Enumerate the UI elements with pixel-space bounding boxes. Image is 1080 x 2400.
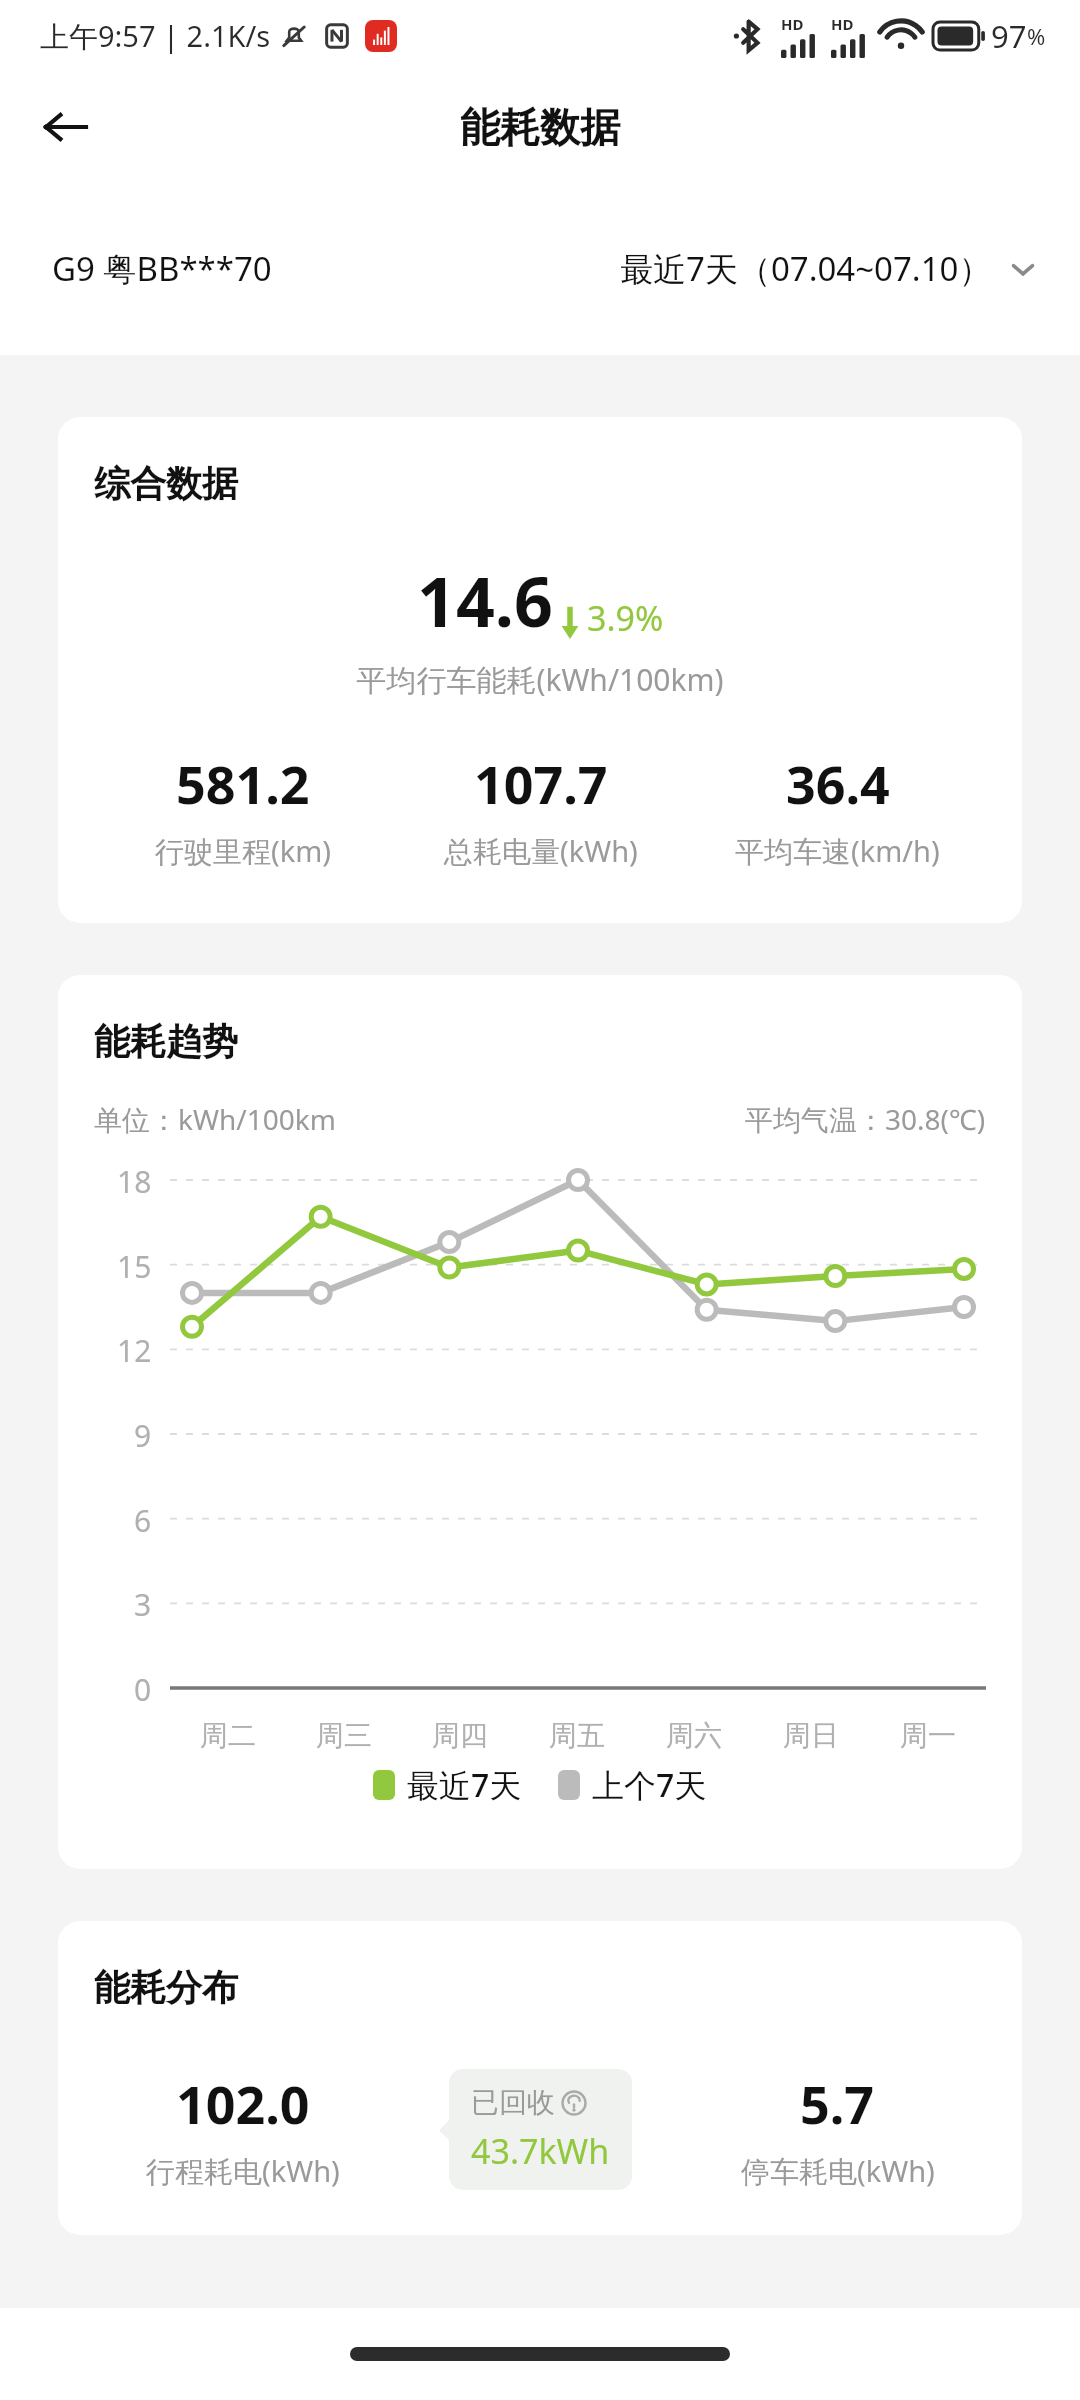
staticText: 上午9:57 | 2.1K/s [40,16,271,56]
staticText: 周日 [783,1718,839,1753]
staticText: 平均行车能耗(kWh/100km) [94,659,986,700]
staticText: 15 [117,1246,152,1287]
button[interactable]: G9 粤BB***70 [52,246,272,291]
staticText: HD [831,14,854,34]
staticText: 周六 [666,1718,722,1753]
staticText: 能耗分布 [94,1965,238,2010]
staticText: 周二 [200,1718,256,1753]
staticText: 周一 [900,1718,956,1753]
staticText: 已回收 [471,2085,555,2120]
staticText: 平均车速(km/h) [735,831,940,871]
staticText: 43.7kWh [471,2128,610,2174]
staticText: 9 [134,1415,152,1456]
button[interactable]: 最近7天（07.04~07.10） [620,246,1040,291]
staticText: 行程耗电(kWh) [146,2151,340,2191]
button[interactable]: 能耗分布 [58,1921,1022,2235]
staticText: 6 [134,1500,152,1541]
staticText: 36.4 [786,748,890,819]
button[interactable]: 综合数据 [58,417,1022,923]
staticText: HD [781,14,804,34]
button[interactable]: 能耗趋势 [58,975,1022,1869]
staticText: 581.2 [176,748,310,819]
button[interactable]: 返回 [28,89,104,165]
staticText: 最近7天（07.04~07.10） [620,246,992,291]
staticText: 停车耗电(kWh) [741,2151,935,2191]
staticText: 107.7 [474,748,608,819]
staticText: 最近7天 [407,1763,522,1807]
staticText: 综合数据 [94,461,238,506]
staticText: 3.9% [587,595,664,641]
staticText: 102.0 [176,2068,310,2139]
staticText: 12 [117,1330,152,1371]
staticText: % [1027,21,1046,51]
staticText: 周三 [316,1718,372,1753]
button[interactable]: 已回收 [449,2069,632,2190]
staticText: 18 [117,1161,152,1202]
staticText: 3 [134,1584,152,1625]
staticText: 周四 [432,1718,488,1753]
staticText: 14.6 [417,554,553,647]
staticText: 总耗电量(kWh) [444,831,638,871]
staticText: 行驶里程(km) [155,831,332,871]
staticText: 5.7 [800,2068,875,2139]
staticText: 上个7天 [592,1763,707,1807]
staticText: 97 [991,15,1027,57]
staticText: 周五 [549,1718,605,1753]
staticText: 能耗数据 [460,102,620,152]
staticText: 单位：kWh/100km [94,1100,336,1138]
staticText: 0 [134,1669,152,1710]
staticText: 平均气温：30.8(℃) [745,1100,986,1138]
staticText: 能耗趋势 [94,1019,238,1064]
